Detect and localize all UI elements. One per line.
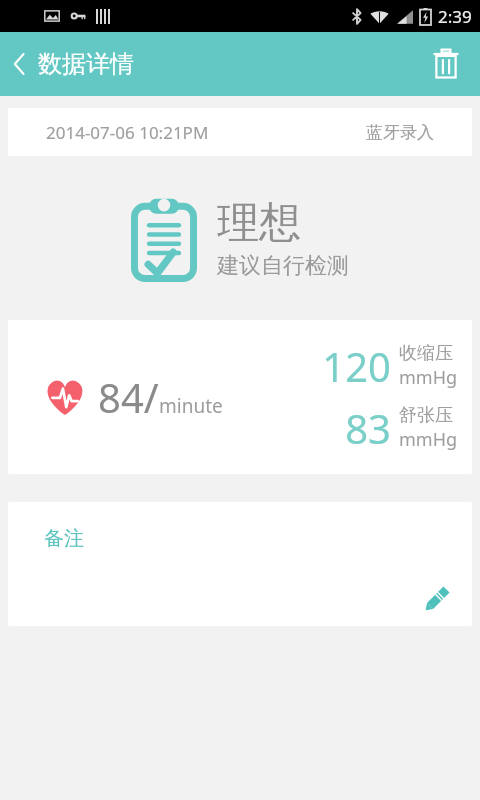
staticText: 2014-07-06 10:21PM: [46, 121, 209, 144]
button[interactable]: Delete: [422, 40, 470, 88]
staticText: mmHg: [399, 427, 458, 452]
staticText: 数据详情: [38, 49, 134, 79]
button[interactable]: 2014-07-06 10:21PM: [8, 108, 472, 156]
staticText: 收缩压: [399, 342, 453, 365]
staticText: mmHg: [399, 365, 458, 390]
staticText: 84/: [98, 370, 159, 424]
staticText: 舒张压: [399, 404, 453, 427]
staticText: 83: [345, 401, 391, 455]
button[interactable]: 备注: [8, 502, 472, 626]
staticText: 理想: [217, 197, 301, 250]
staticText: 120: [322, 339, 391, 393]
staticText: minute: [159, 393, 223, 419]
staticText: 备注: [44, 526, 84, 551]
staticText: 蓝牙录入: [366, 122, 434, 143]
staticText: 2:39: [438, 5, 472, 28]
button[interactable]: 数据详情: [0, 41, 146, 87]
staticText: 建议自行检测: [217, 252, 349, 280]
button[interactable]: Edit note: [416, 576, 460, 620]
button[interactable]: 84/: [8, 320, 472, 474]
